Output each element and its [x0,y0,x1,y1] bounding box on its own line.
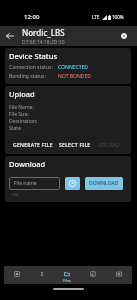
staticText: /file [11,192,19,197]
staticText: DOWNLOAD [89,180,119,187]
staticText: File Name: [9,104,34,111]
staticText: Destination: [9,118,38,125]
button[interactable]: GENERATE FILE [13,140,53,151]
button[interactable]: Bonded [29,266,54,284]
staticText: NOT BONDED [58,73,91,80]
staticText: D7:6E:14:18:2D:30 [22,39,65,46]
button[interactable]: More [106,266,132,284]
staticText: Files [63,278,71,283]
staticText: LTE [92,14,100,20]
staticText: Upload [9,89,35,99]
staticText: 12:00 [24,13,40,21]
staticText: Device Status [9,51,58,61]
staticText: SELECT FILE [59,142,91,149]
button[interactable]: Recent files [65,177,80,190]
staticText: Connection status: [9,64,53,71]
staticText: File name [14,180,37,187]
button[interactable]: Settings [114,26,134,46]
staticText: GENERATE FILE [13,142,53,149]
button[interactable]: UPLOAD [98,140,120,151]
button[interactable]: Back [0,26,20,46]
staticText: Bonding status: [9,73,46,80]
staticText: CONNECTED [58,64,88,71]
button[interactable]: Image [80,266,106,284]
staticText: UPLOAD [98,142,120,149]
staticText: Download [9,159,46,169]
staticText: Nordic_LBS [22,27,65,38]
button[interactable]: Files [54,266,80,284]
staticText: State [9,125,21,132]
staticText: 100% [112,14,124,20]
button[interactable]: Scanner [4,266,29,284]
button[interactable]: DOWNLOAD [85,177,123,190]
button[interactable]: SELECT FILE [59,140,91,151]
button[interactable]: File name [9,177,60,190]
staticText: File Size: [9,111,29,118]
